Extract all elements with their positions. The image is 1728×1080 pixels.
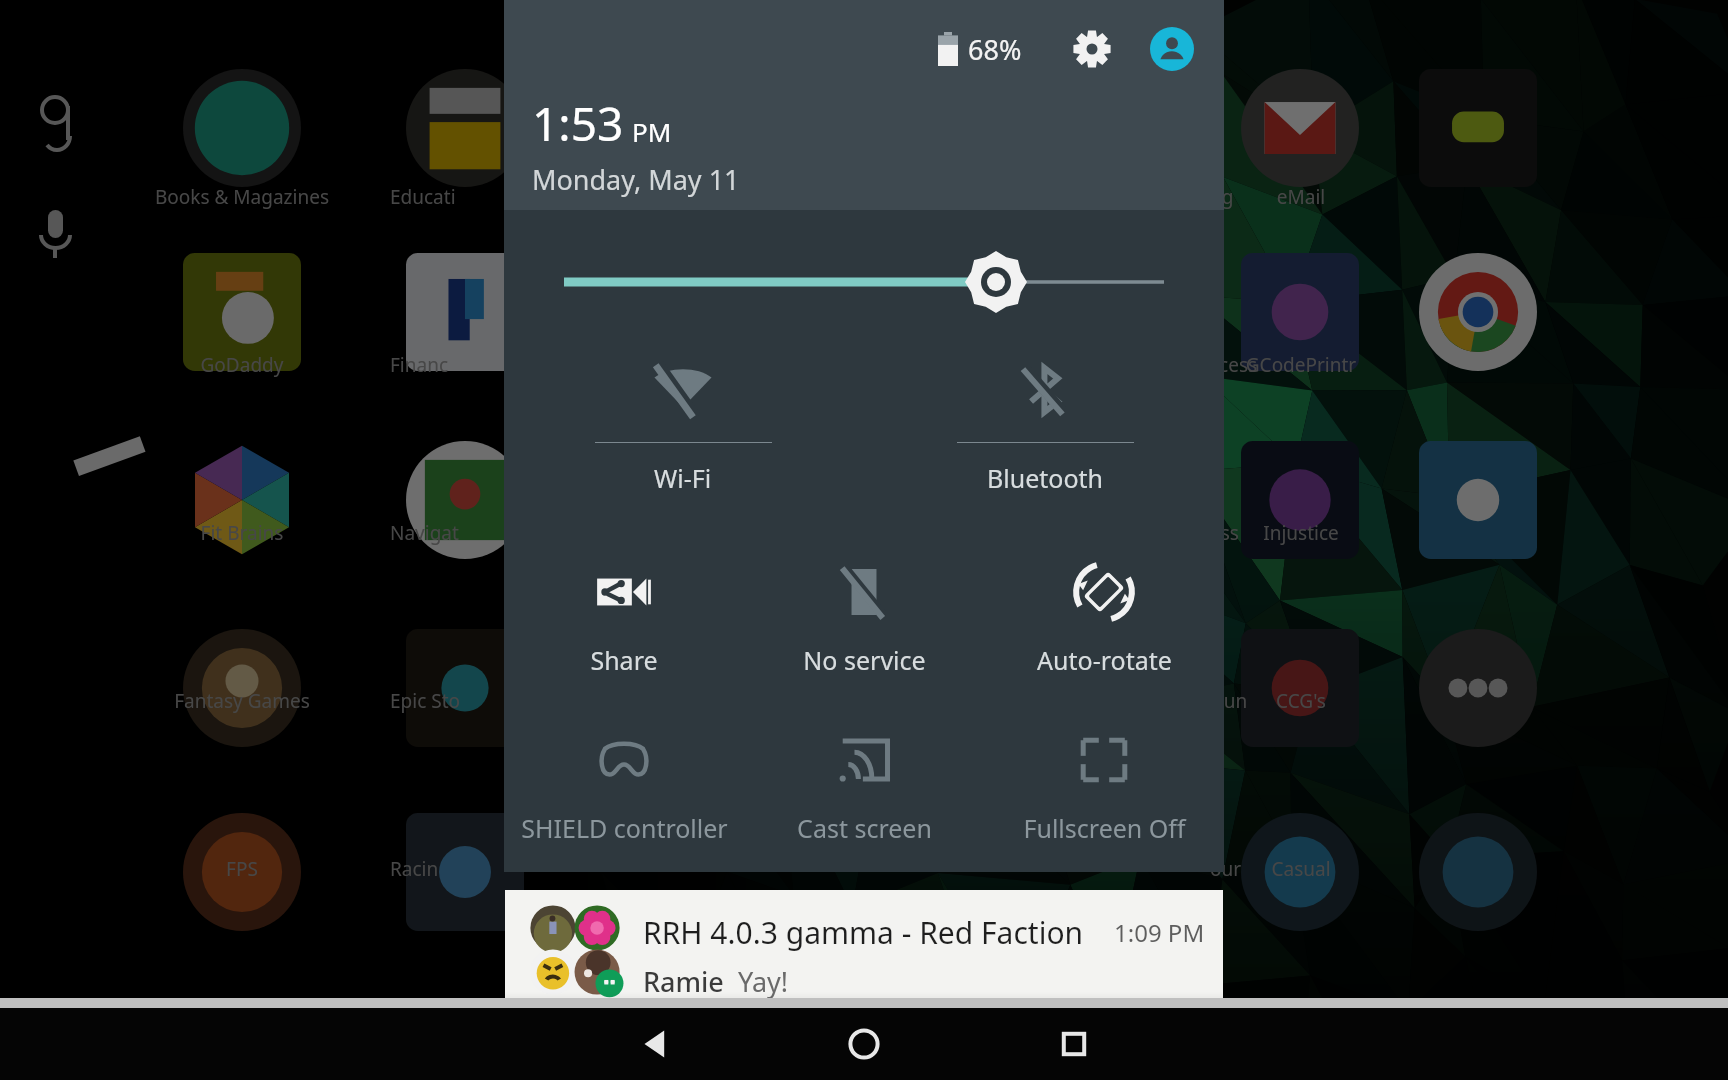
staticText: Auto-rotate — [1037, 643, 1172, 677]
staticText: SHIELD controller — [521, 811, 728, 845]
button[interactable]: Brightness — [504, 252, 1224, 312]
button[interactable]: Settings — [1064, 21, 1120, 77]
staticText: CCG's — [1190, 688, 1412, 714]
staticText: Navigat — [390, 520, 459, 546]
staticText: 1:53 — [532, 92, 624, 155]
staticText: FPS — [129, 856, 355, 882]
staticText: Share — [590, 643, 658, 677]
staticText: Fit Brains — [129, 520, 355, 546]
button[interactable]: Back — [594, 1008, 714, 1080]
button[interactable]: RRH 4.0.3 gamma - Red Faction follo.. — [505, 890, 1223, 1008]
staticText: Ramie — [643, 963, 724, 1000]
button[interactable]: Bluetooth — [902, 352, 1188, 501]
staticText: eMail — [1190, 184, 1412, 210]
staticText: Epic Sto — [390, 688, 460, 714]
staticText: Bluetooth — [987, 461, 1104, 495]
staticText: 1:09 PM — [1114, 916, 1205, 949]
button[interactable]: Fullscreen Off — [984, 713, 1224, 855]
staticText: No service — [803, 643, 926, 677]
button[interactable]: Recent apps — [1014, 1008, 1134, 1080]
staticText: Fantasy Games — [129, 688, 355, 714]
button[interactable]: User profile — [1144, 21, 1200, 77]
button[interactable]: Home — [804, 1008, 924, 1080]
staticText: our — [1210, 856, 1242, 882]
staticText: Casual — [1190, 856, 1412, 882]
button[interactable]: Share — [504, 545, 744, 687]
button[interactable]: SHIELD controller — [504, 713, 744, 855]
button[interactable]: Cast screen — [744, 713, 984, 855]
staticText: PM — [632, 114, 672, 149]
staticText: Gun — [1210, 688, 1248, 714]
staticText: Yay! — [738, 963, 789, 1000]
staticText: Educati — [390, 184, 456, 210]
staticText: ess — [1210, 520, 1239, 546]
button[interactable]: Auto-rotate — [984, 545, 1224, 687]
staticText: 68% — [968, 31, 1022, 68]
staticText: GoDaddy — [129, 352, 355, 378]
staticText: Monday, May 11 — [532, 161, 740, 198]
staticText: Fullscreen Off — [1023, 811, 1186, 845]
staticText: ccess — [1210, 352, 1258, 378]
button[interactable]: No service — [744, 545, 984, 687]
staticText: ng — [1210, 184, 1234, 210]
staticText: Injustice — [1190, 520, 1412, 546]
staticText: GCodePrintr — [1190, 352, 1412, 378]
staticText: Racin — [390, 856, 439, 882]
staticText: Wi-Fi — [654, 461, 712, 495]
staticText: Books & Magazines — [129, 184, 355, 210]
button[interactable]: Wi-Fi — [540, 352, 826, 501]
staticText: RRH 4.0.3 gamma - Red Faction follo.. — [643, 912, 1100, 953]
staticText: Financ — [390, 352, 449, 378]
staticText: Cast screen — [797, 811, 932, 845]
